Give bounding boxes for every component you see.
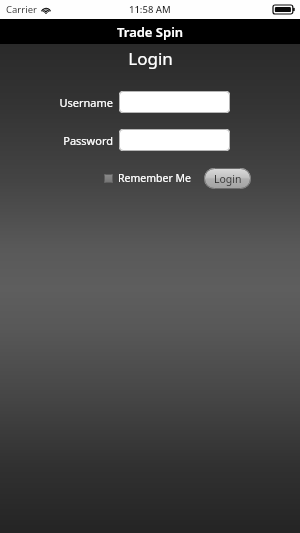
staticText: Username (59, 95, 113, 110)
staticText: Login (128, 47, 173, 70)
staticText: 11:58 AM (129, 3, 171, 16)
button[interactable]: Remember Me (104, 167, 191, 189)
button[interactable]: Login (204, 168, 251, 189)
button[interactable] (119, 129, 230, 151)
staticText: Carrier (6, 3, 37, 16)
staticText: Remember Me (118, 171, 191, 185)
staticText: Login (214, 172, 242, 186)
staticText: Trade Spin (117, 23, 184, 41)
staticText: Password (63, 133, 113, 148)
button[interactable] (119, 91, 230, 113)
